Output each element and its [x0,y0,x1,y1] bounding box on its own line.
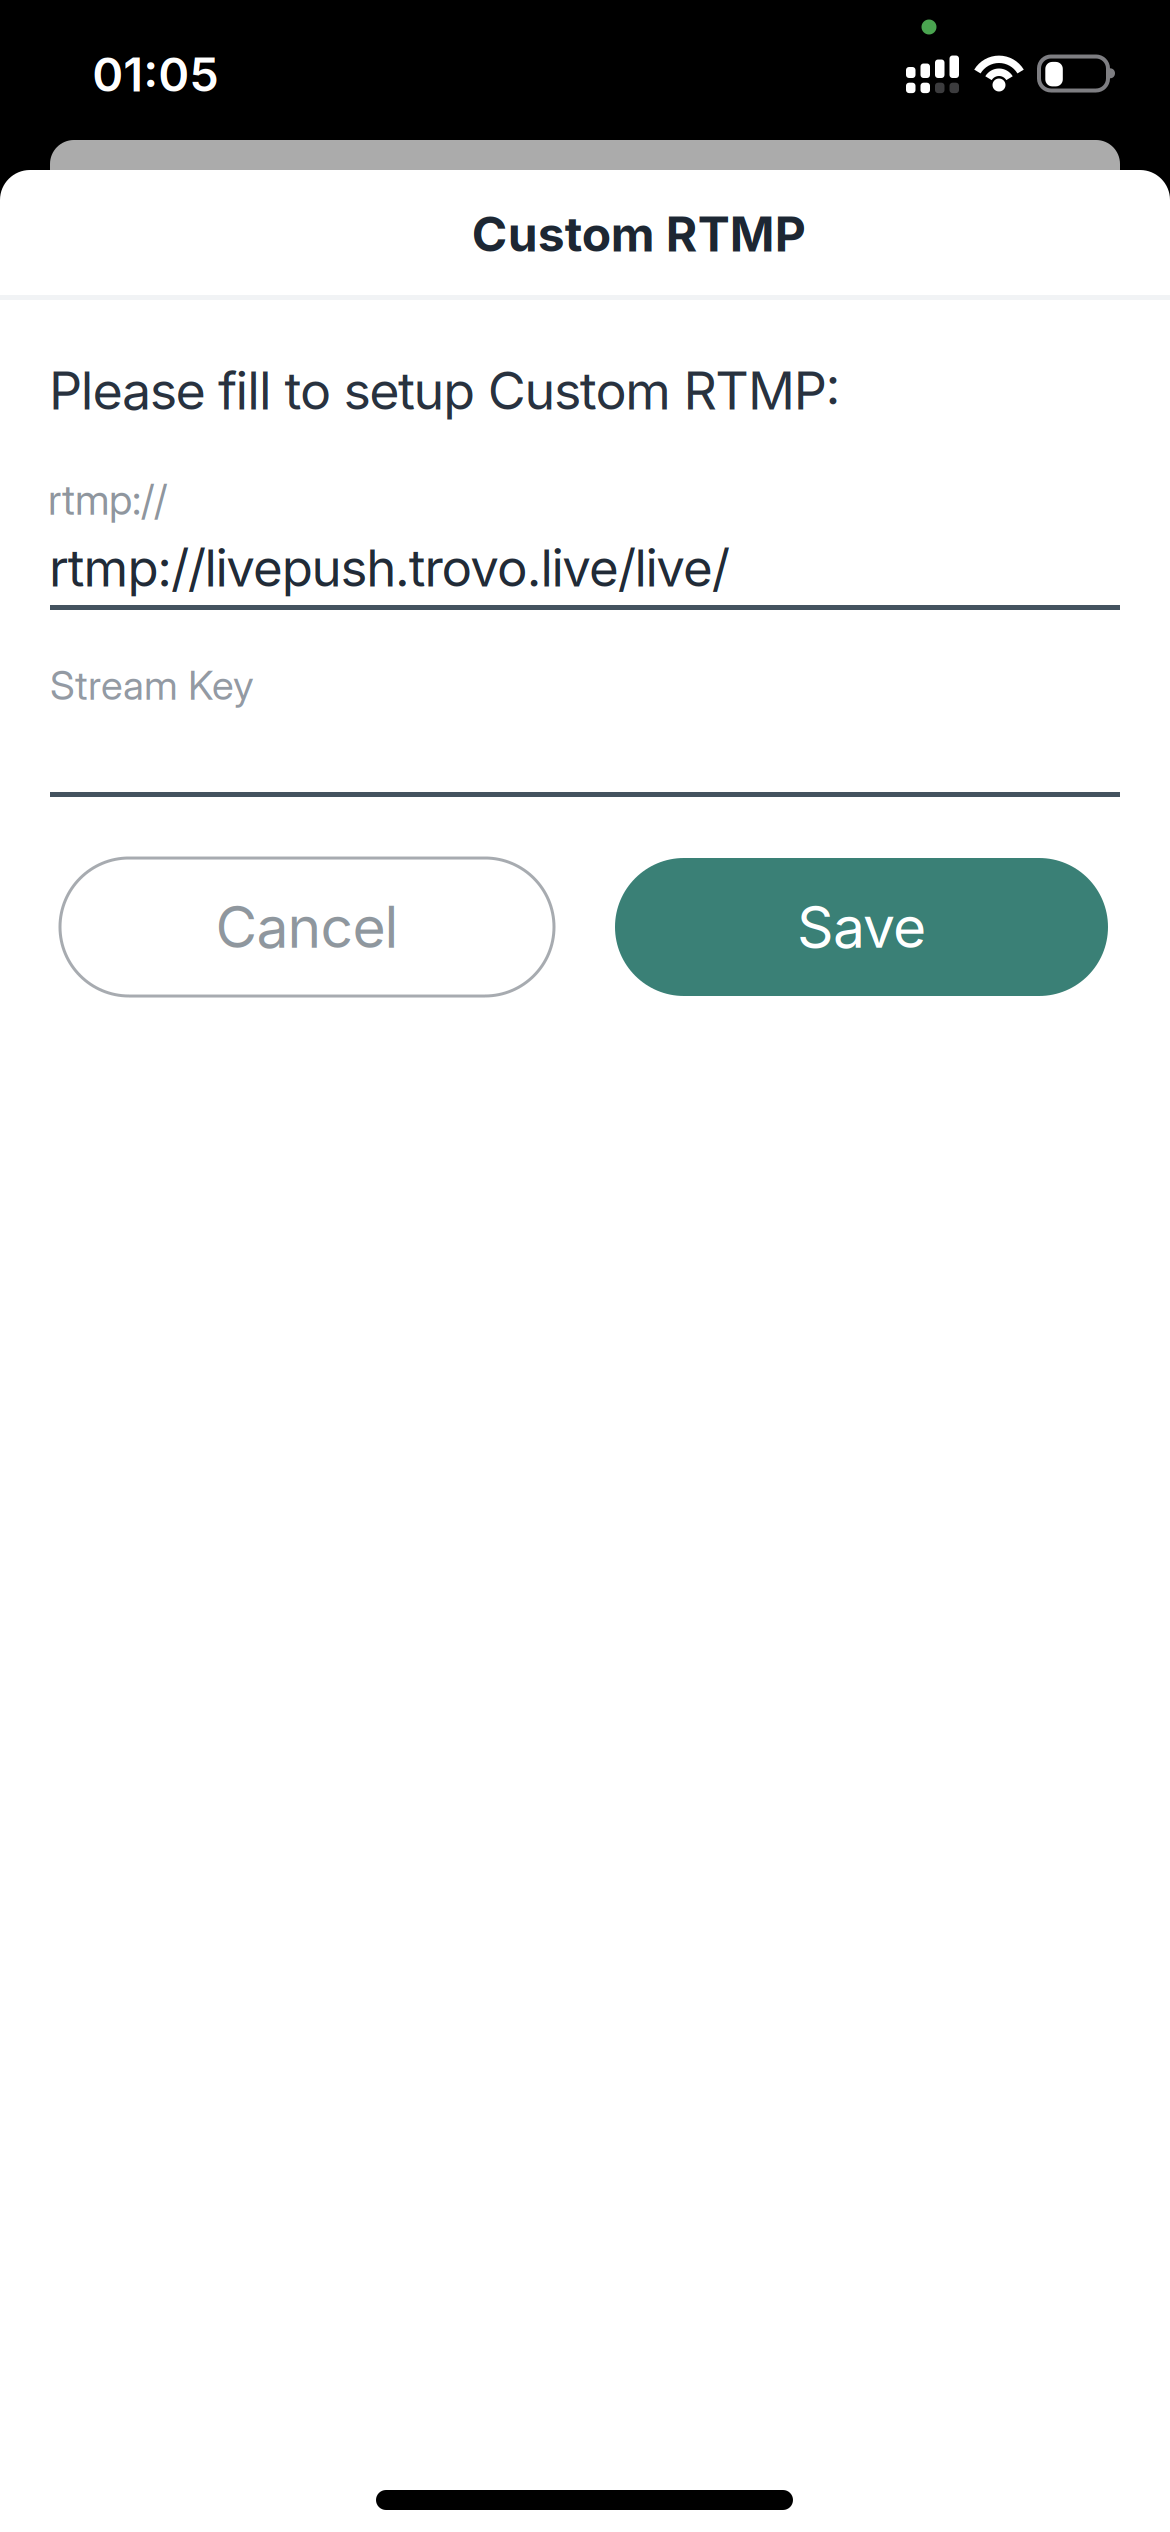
staticText: Cancel [215,892,398,961]
staticText: rtmp://livepush.trovo.live/live/ [49,537,730,599]
staticText: Stream Key [50,661,254,709]
staticText: Save [797,892,926,961]
staticText: Custom RTMP [472,205,806,263]
staticText: 01:05 [92,46,219,103]
staticText: Please fill to setup Custom RTMP: [49,359,840,422]
staticText: rtmp:// [48,475,167,525]
